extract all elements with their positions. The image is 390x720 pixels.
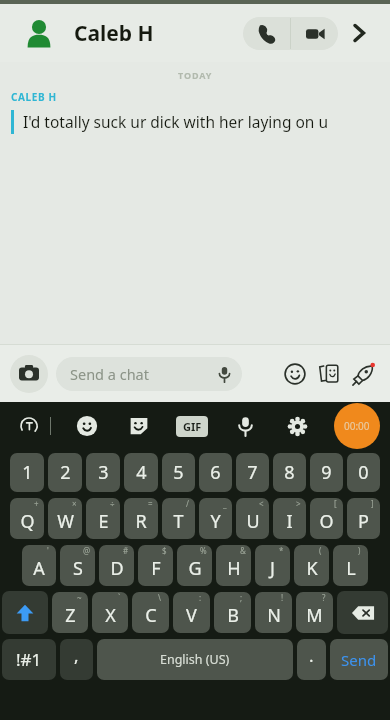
staticText: Q [20,509,35,534]
button[interactable]: Emoji [278,357,312,391]
staticText: G [188,556,202,581]
button[interactable]: I'd totally suck ur dick with her laying… [0,110,390,134]
staticText: D [110,556,124,581]
button[interactable]: 4 [124,453,158,492]
staticText: & [240,545,246,556]
staticText: > [296,498,301,509]
button[interactable]: ' [22,545,56,586]
staticText: English (US) [160,651,230,668]
button[interactable]: = [124,498,158,539]
button[interactable]: # [99,545,134,586]
staticText: ` [118,592,121,603]
button[interactable]: 0 [347,453,380,492]
button[interactable]: ` [92,592,128,633]
button[interactable]: Voice call [243,17,290,50]
button[interactable]: + [10,498,44,539]
staticText: CALEB H [11,90,57,104]
button[interactable]: 9 [310,453,343,492]
staticText: TODAY [178,69,213,81]
button[interactable]: Stickers [124,411,154,441]
button[interactable]: 1 [10,453,44,492]
button[interactable]: / [162,498,195,539]
button[interactable]: Next [338,4,380,62]
button[interactable]: English (US) [97,639,293,680]
staticText: 5 [173,460,184,485]
staticText: ÷ [110,498,115,509]
button[interactable]: Stickers [312,357,346,391]
staticText: $ [162,545,167,556]
button[interactable]: Emoji [72,411,102,441]
button[interactable]: 8 [273,453,306,492]
staticText: \ [158,592,161,603]
button[interactable]: ; [214,592,251,633]
staticText: ( [319,545,322,556]
button[interactable]: GIF [176,416,208,437]
button[interactable]: Backspace [337,591,388,634]
button[interactable]: ÷ [86,498,120,539]
staticText: + [34,498,39,509]
button[interactable]: Video call [291,17,338,50]
button[interactable]: * [255,545,290,586]
button[interactable]: ~ [52,592,88,633]
staticText: . [309,644,314,667]
staticText: , [74,644,79,667]
button[interactable]: Send a chat [56,357,242,391]
button[interactable]: @ [60,545,95,586]
staticText: !#1 [16,648,42,671]
button[interactable]: > [273,498,306,539]
button[interactable]: < [236,498,269,539]
staticText: N [267,603,281,628]
button[interactable]: ? [296,592,333,633]
button[interactable]: 6 [199,453,232,492]
button[interactable]: Shift [2,591,48,634]
button[interactable]: \ [132,592,169,633]
staticText: U [246,509,260,534]
staticText: ] [371,498,374,509]
staticText: V [186,603,197,628]
button[interactable]: Camera [10,355,48,393]
button[interactable]: Voice input [230,411,260,441]
staticText: M [306,603,323,628]
staticText: 0 [358,460,369,485]
button[interactable]: 5 [162,453,195,492]
button[interactable]: × [48,498,82,539]
button[interactable]: ] [347,498,380,539]
button[interactable]: , [60,639,93,680]
staticText: [ [334,498,337,509]
staticText: F [151,556,161,581]
button[interactable]: & [216,545,251,586]
staticText: × [72,498,77,509]
button[interactable]: 2 [48,453,82,492]
button[interactable]: % [177,545,212,586]
button[interactable]: . [297,639,326,680]
button[interactable]: $ [138,545,173,586]
button[interactable]: Record [334,403,380,449]
staticText: Send [341,650,377,670]
button[interactable]: : [173,592,210,633]
staticText: 3 [98,460,109,485]
staticText: * [279,545,284,556]
staticText: I'd totally suck ur dick with her laying… [23,111,329,132]
button[interactable]: ! [255,592,292,633]
staticText: < [259,498,264,509]
button[interactable]: ) [333,545,368,586]
button[interactable]: Text suggestions [14,411,44,441]
staticText: L [346,556,356,581]
staticText: @ [83,545,91,556]
staticText: H [227,556,241,581]
button[interactable]: 3 [86,453,120,492]
button[interactable]: 7 [236,453,269,492]
button[interactable]: !#1 [2,639,56,680]
button[interactable]: Send [330,639,388,680]
button[interactable]: Send options [346,357,380,391]
button[interactable]: _ [199,498,232,539]
button[interactable]: ( [294,545,329,586]
staticText: 7 [247,460,258,485]
staticText: # [123,545,129,556]
staticText: ! [281,592,284,603]
button[interactable]: Settings [282,411,312,441]
staticText: R [135,509,147,534]
staticText: C [145,603,157,628]
button[interactable]: [ [310,498,343,539]
button[interactable]: Profile [22,16,56,50]
